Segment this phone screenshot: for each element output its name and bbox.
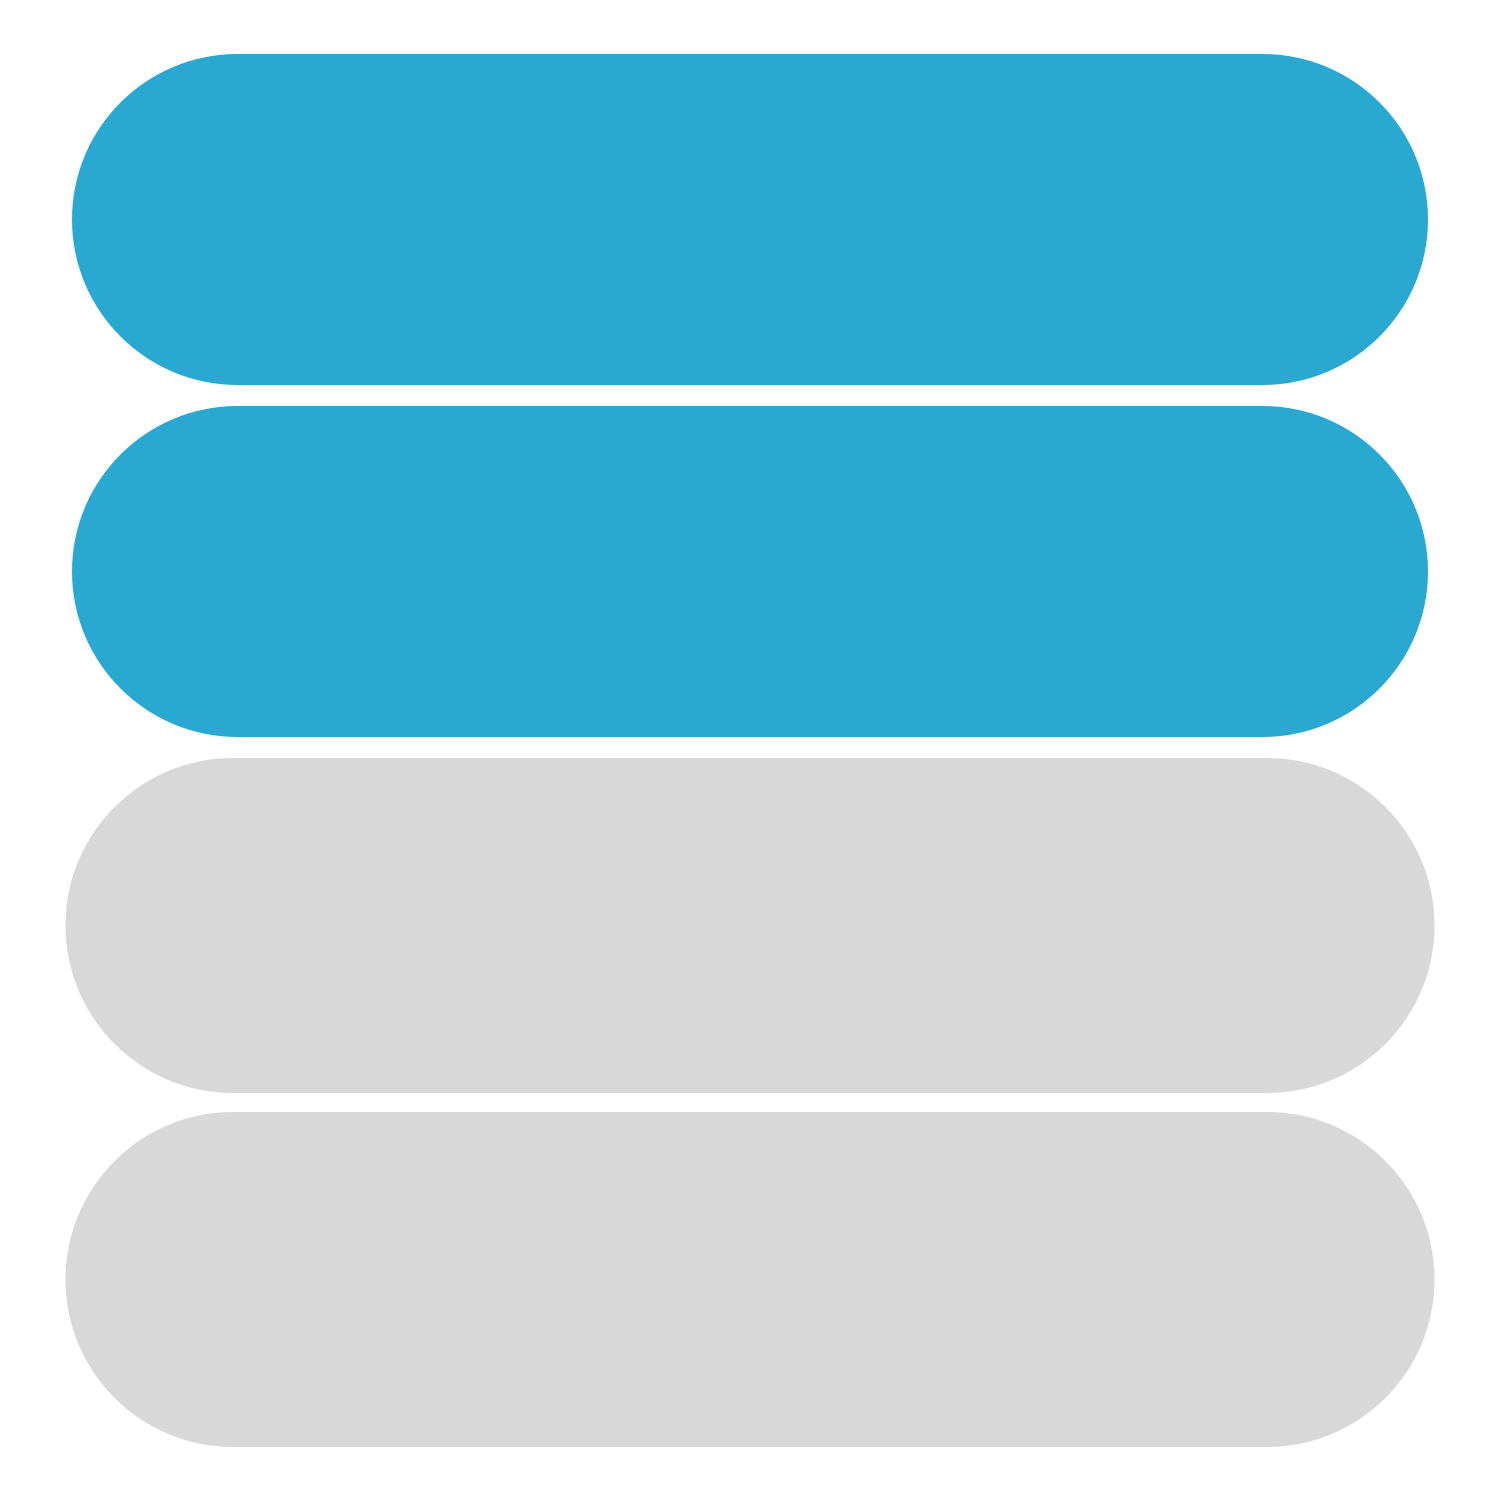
button[interactable]: Primary action: [72, 54, 1428, 385]
button[interactable]: Secondary action: [72, 406, 1428, 737]
button[interactable]: Fourth action: [65, 1112, 1434, 1447]
button[interactable]: Third action: [65, 758, 1434, 1093]
